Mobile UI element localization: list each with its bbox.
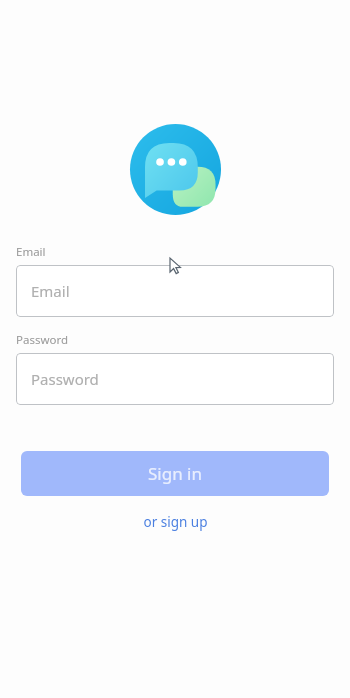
staticText: Sign in <box>148 462 202 485</box>
button[interactable]: Email <box>16 265 334 317</box>
button[interactable]: Sign in <box>21 451 329 496</box>
button[interactable]: or sign up <box>135 510 216 534</box>
other: App logo <box>130 124 221 215</box>
staticText: Email <box>31 281 70 301</box>
button[interactable]: Password <box>16 353 334 405</box>
staticText: Email <box>16 244 46 260</box>
staticText: or sign up <box>143 513 208 531</box>
staticText: Password <box>16 332 69 348</box>
staticText: Password <box>31 369 99 389</box>
